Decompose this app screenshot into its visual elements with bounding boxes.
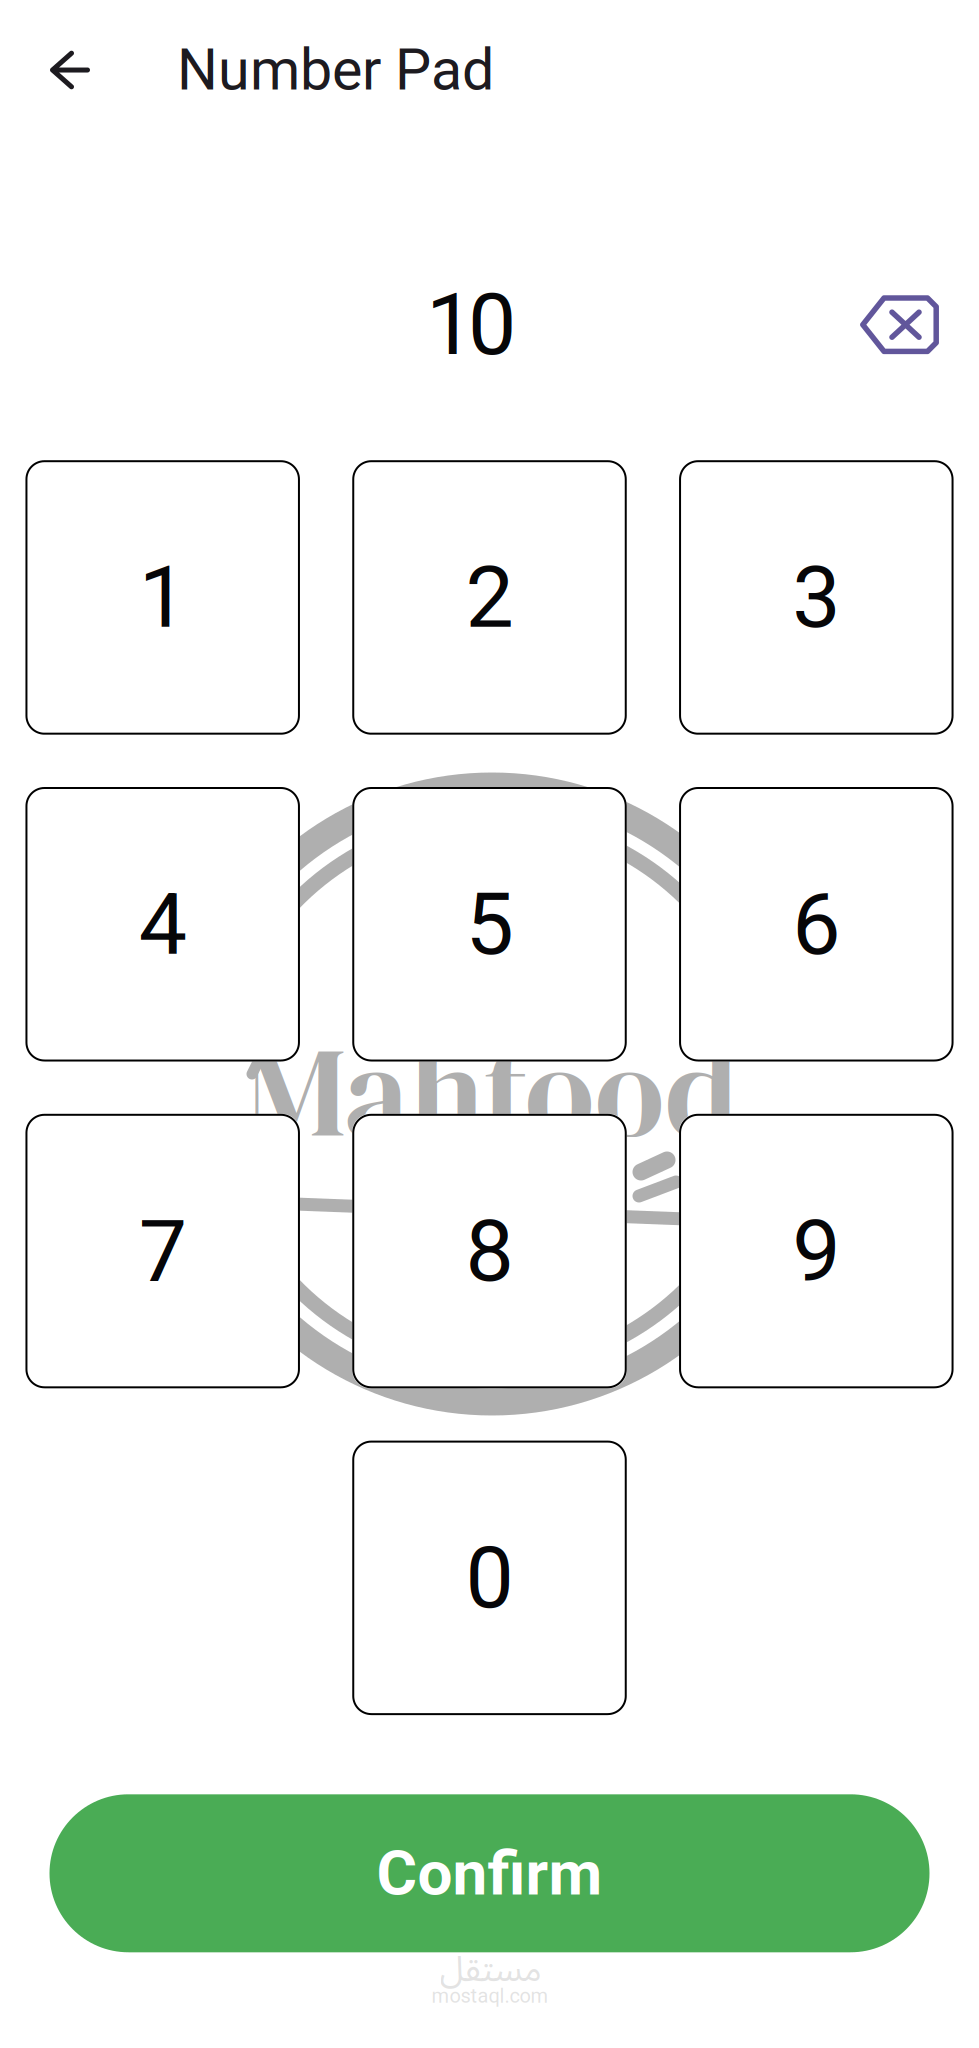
button[interactable]: 5: [352, 787, 627, 1061]
staticText: 4: [139, 874, 187, 975]
staticText: Confirm: [376, 1837, 602, 1910]
staticText: مستقل: [439, 1933, 541, 2007]
staticText: 10: [426, 274, 516, 375]
staticText: mostaql.com: [431, 1984, 548, 2008]
staticText: 0: [465, 1527, 513, 1628]
staticText: 3: [792, 547, 840, 648]
button[interactable]: Delete: [860, 295, 939, 354]
staticText: 7: [139, 1201, 187, 1301]
staticText: Number Pad: [177, 36, 494, 104]
button[interactable]: 7: [25, 1114, 300, 1388]
staticText: 9: [792, 1201, 840, 1301]
staticText: 8: [465, 1201, 513, 1301]
button[interactable]: Back: [24, 24, 116, 116]
button[interactable]: 6: [679, 787, 953, 1061]
button[interactable]: 2: [352, 460, 627, 735]
button[interactable]: 0: [352, 1441, 627, 1715]
button[interactable]: 1: [25, 460, 300, 735]
button[interactable]: 3: [679, 460, 953, 735]
staticText: 6: [792, 874, 840, 975]
staticText: 5: [465, 874, 513, 975]
staticText: 2: [465, 547, 513, 648]
button[interactable]: 8: [352, 1114, 627, 1388]
staticText: 1: [139, 547, 187, 648]
staticText: Mahfood: [246, 1004, 738, 1178]
button[interactable]: 9: [679, 1114, 953, 1388]
button[interactable]: 4: [25, 787, 300, 1061]
button[interactable]: Confirm: [49, 1794, 929, 1952]
